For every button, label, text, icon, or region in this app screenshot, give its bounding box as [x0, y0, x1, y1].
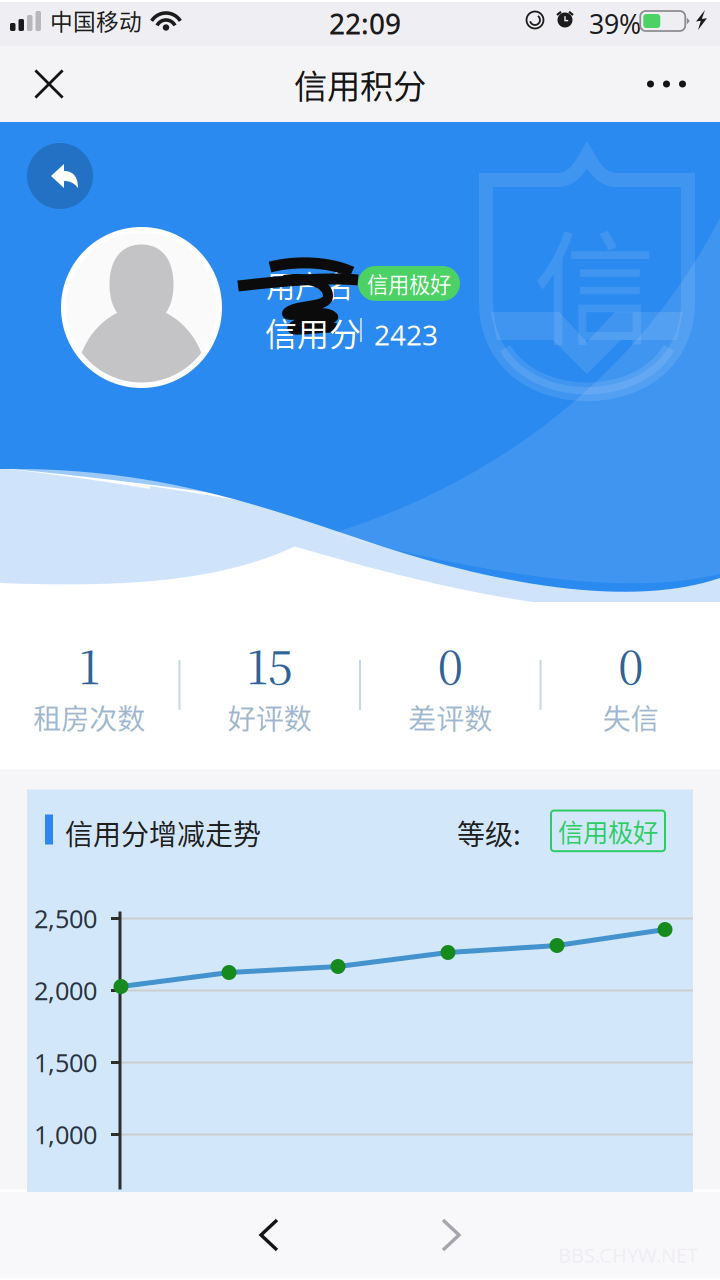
staticText: 租房次数: [33, 697, 145, 738]
staticText: 2423: [374, 316, 438, 353]
staticText: 2,000: [34, 974, 97, 1007]
staticText: 差评数: [408, 697, 492, 738]
staticText: 0: [438, 632, 463, 697]
staticText: 信用积分: [294, 60, 426, 108]
staticText: 失信: [603, 697, 659, 738]
staticText: 信用分: [265, 309, 361, 355]
staticText: BBS.CHYW.NET: [558, 1242, 698, 1268]
staticText: 信用分增减走势: [65, 812, 261, 853]
staticText: 信用极好: [558, 812, 658, 849]
staticText: 1,500: [34, 1046, 97, 1079]
staticText: 22:09: [329, 5, 401, 42]
button[interactable]: Forward: [403, 1200, 498, 1270]
button[interactable]: More: [625, 46, 708, 122]
staticText: 1,000: [34, 1118, 97, 1151]
staticText: 信用极好: [367, 268, 451, 299]
staticText: 等级:: [457, 812, 521, 853]
staticText: 信: [533, 192, 656, 370]
staticText: 用户名: [266, 263, 353, 305]
staticText: 2,500: [34, 902, 97, 935]
staticText: 39%: [589, 6, 641, 41]
staticText: 好评数: [228, 697, 312, 738]
staticText: 中国移动: [50, 4, 142, 37]
staticText: 0: [618, 632, 643, 697]
staticText: 1: [79, 632, 100, 697]
button[interactable]: Back: [27, 143, 93, 209]
button[interactable]: Back: [222, 1200, 317, 1270]
staticText: 15: [247, 632, 293, 697]
button[interactable]: Close: [12, 46, 86, 122]
